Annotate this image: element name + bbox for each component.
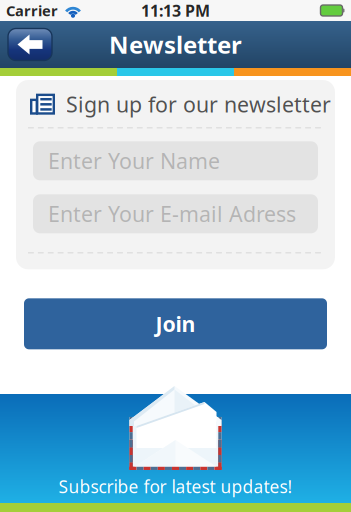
staticText: Newsletter (109, 29, 242, 60)
button[interactable]: Back (8, 28, 52, 60)
staticText: Enter Your E-mail Adress (48, 200, 296, 228)
staticText: Carrier (6, 1, 58, 20)
button[interactable]: Enter Your Name (33, 141, 318, 180)
staticText: Join (155, 310, 195, 338)
button[interactable]: Join (24, 298, 327, 349)
staticText: Subscribe for latest updates! (58, 475, 292, 498)
staticText: Enter Your Name (48, 147, 220, 175)
staticText: Sign up for our newsletter (66, 90, 331, 118)
button[interactable]: Enter Your E-mail Adress (33, 194, 318, 233)
staticText: 11:13 PM (141, 0, 210, 21)
